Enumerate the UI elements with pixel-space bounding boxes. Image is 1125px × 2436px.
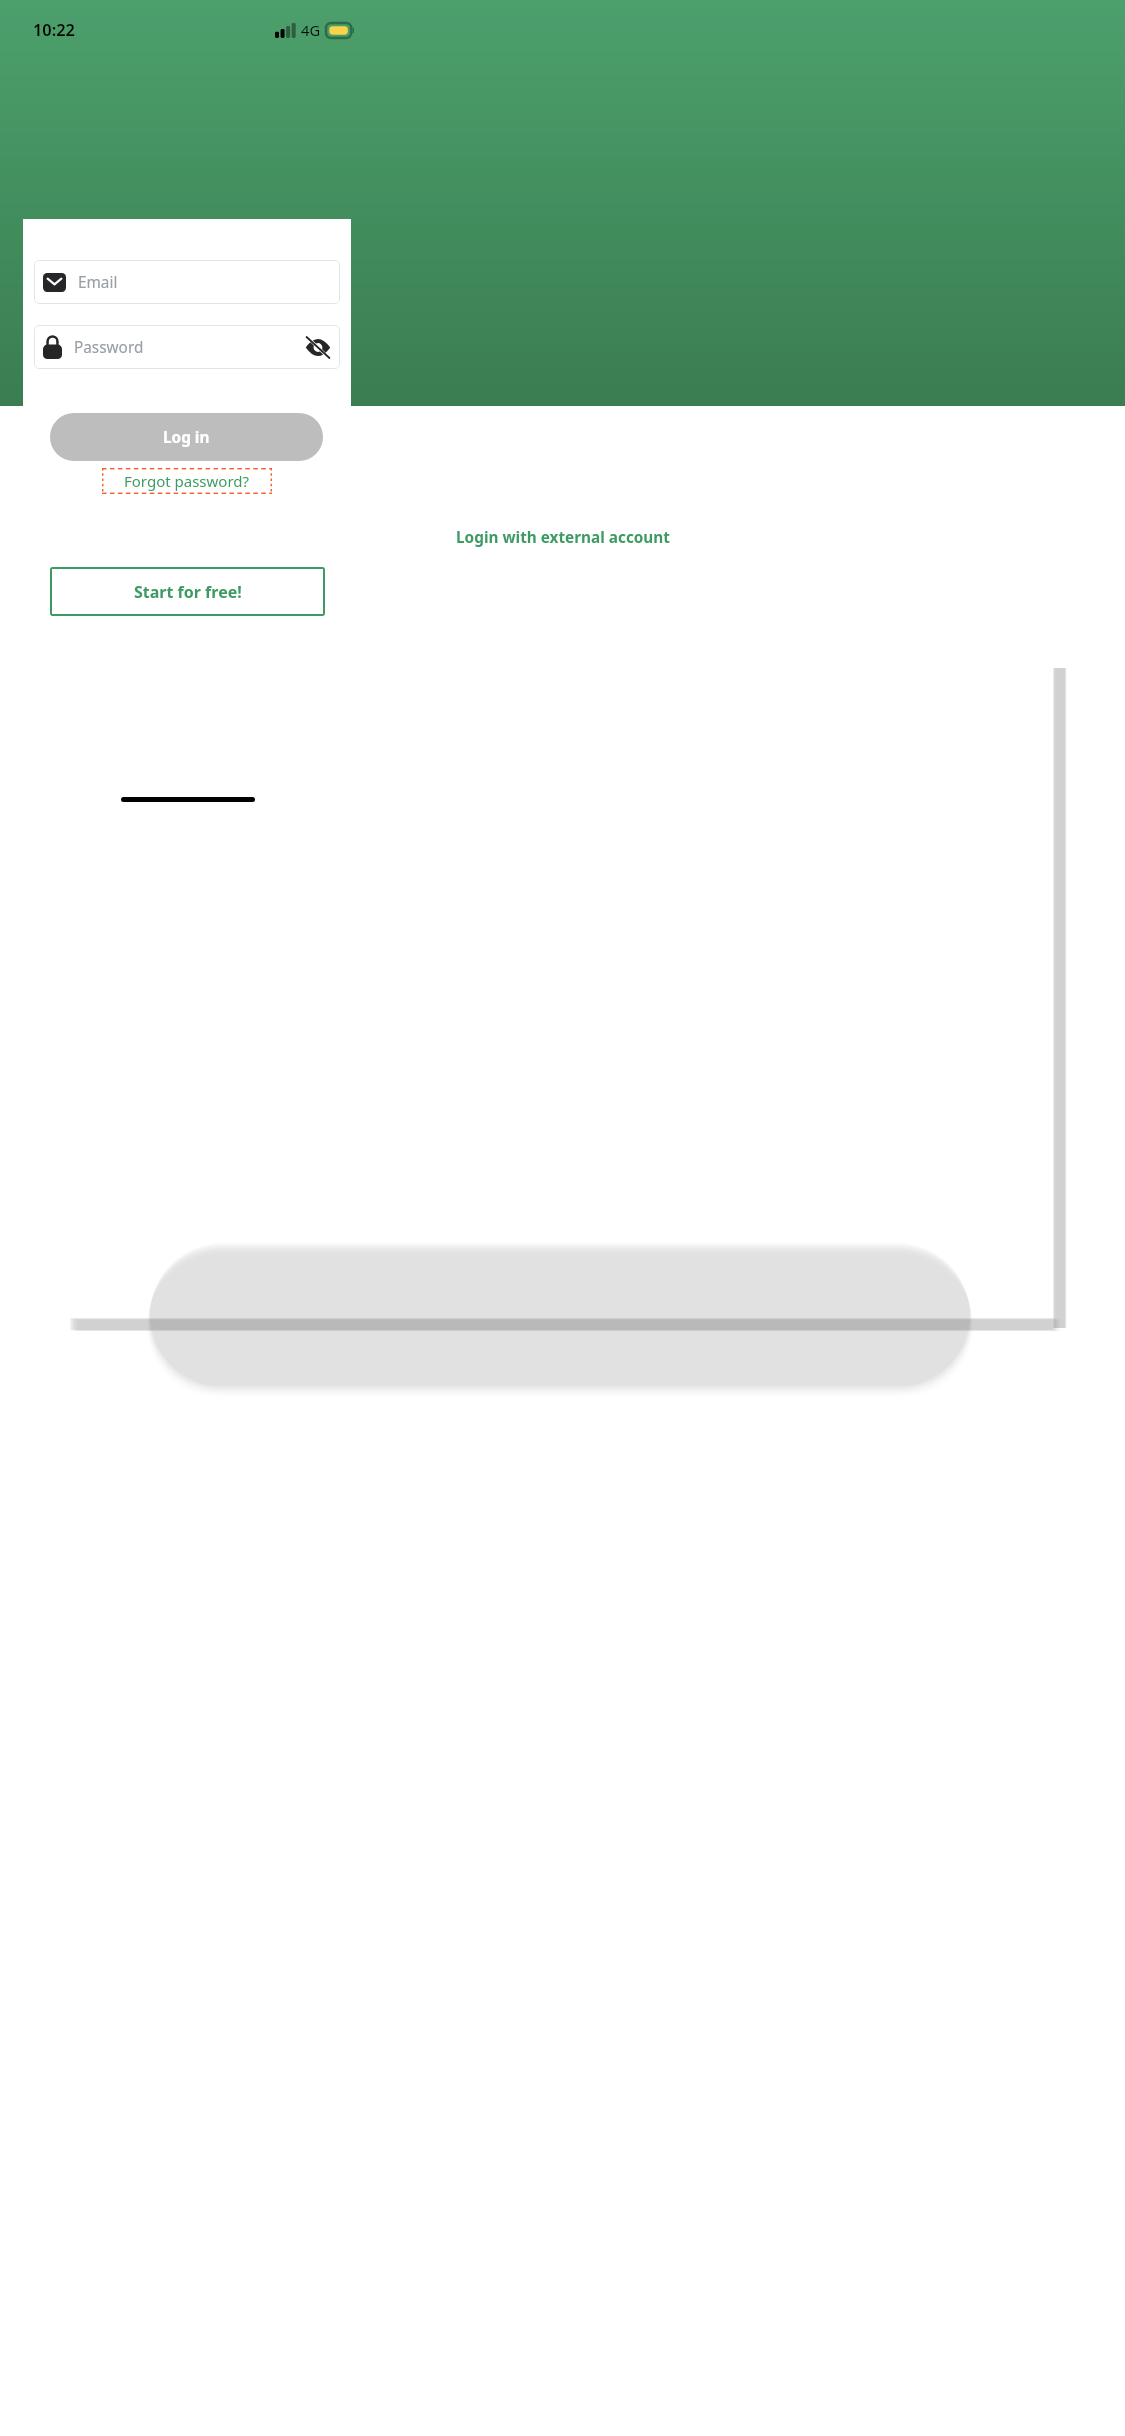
other: Password bbox=[43, 335, 62, 359]
staticText: 4G bbox=[301, 20, 321, 40]
other: Email bbox=[43, 273, 66, 292]
staticText: Login with external account bbox=[456, 527, 670, 548]
button[interactable]: Password bbox=[34, 325, 340, 369]
button[interactable]: Login with external account bbox=[0, 522, 1125, 552]
button[interactable]: Start for free! bbox=[50, 567, 325, 616]
button[interactable]: Log in bbox=[50, 413, 323, 461]
staticText: 10:22 bbox=[33, 19, 75, 41]
staticText: Forgot password? bbox=[124, 471, 250, 491]
other: Show password bbox=[305, 337, 331, 358]
staticText: Password bbox=[74, 337, 144, 358]
button[interactable]: Email bbox=[34, 260, 340, 304]
staticText: Log in bbox=[163, 427, 210, 448]
staticText: Start for free! bbox=[134, 581, 242, 603]
button[interactable]: Forgot password? bbox=[102, 468, 272, 494]
staticText: Email bbox=[78, 272, 118, 293]
